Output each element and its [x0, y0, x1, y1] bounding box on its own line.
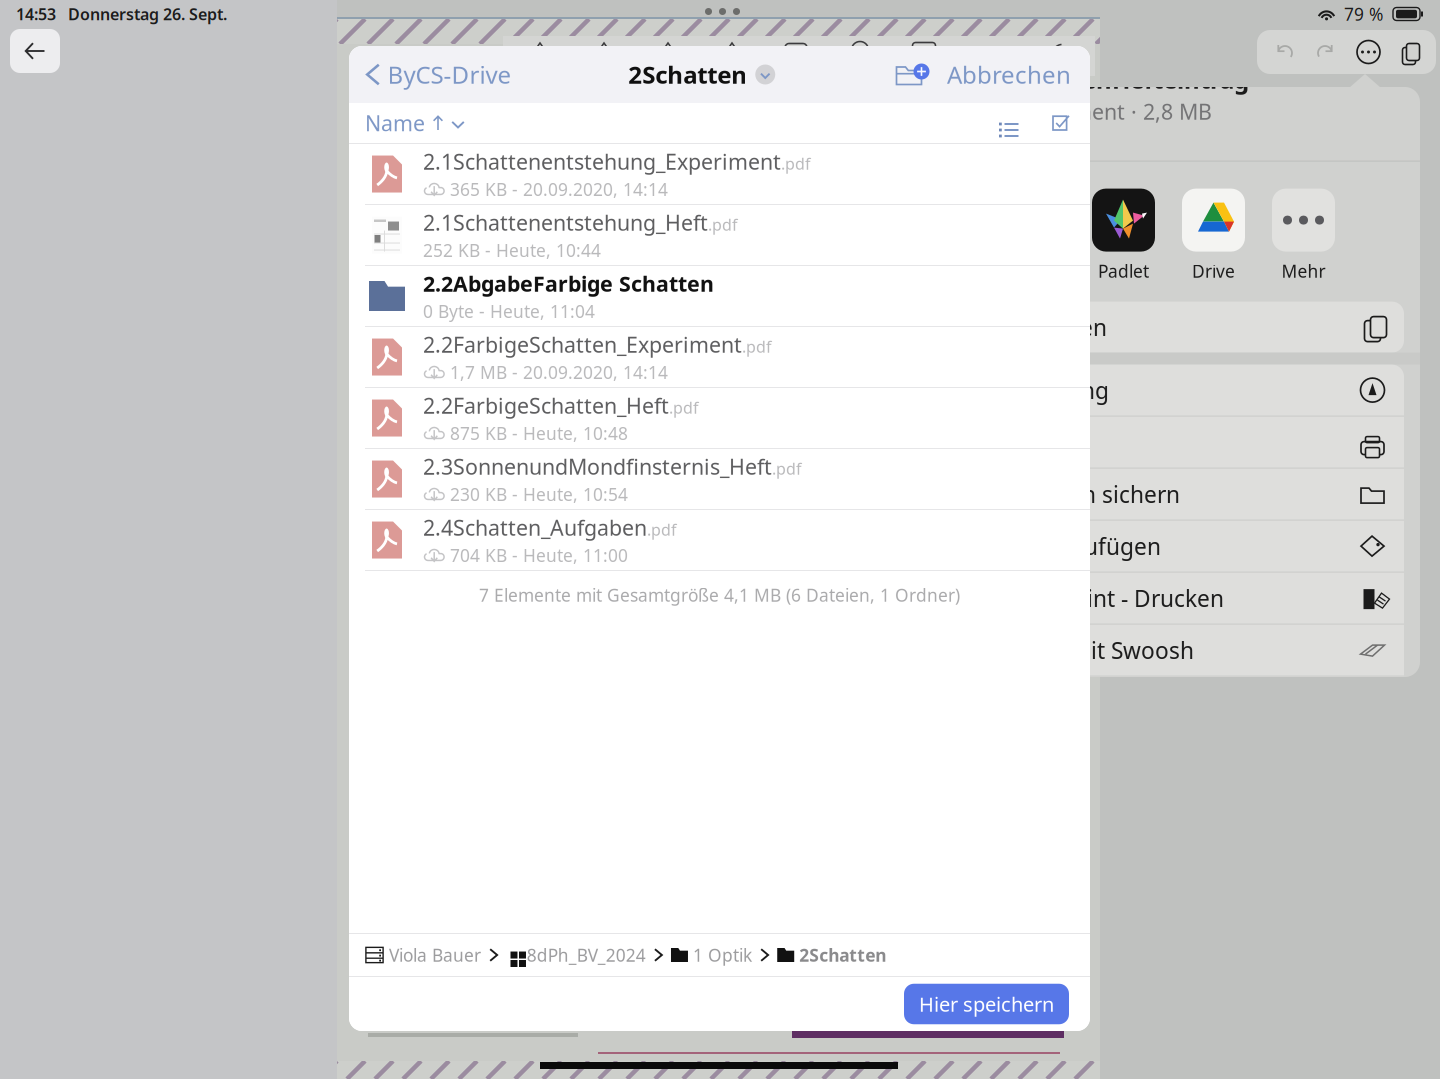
staticText: ByCS-Drive: [387, 59, 511, 90]
staticText: Viola Bauer: [389, 943, 481, 966]
staticText: .pdf: [781, 153, 811, 174]
button[interactable]: List view: [996, 103, 1016, 143]
staticText: 1 Optik: [693, 943, 752, 966]
button[interactable]: Kopieren: [966, 677, 1404, 728]
staticText: Name: [365, 109, 425, 137]
staticText: Duplizieren: [984, 312, 1107, 342]
button[interactable]: 1 Optik: [671, 943, 752, 966]
button[interactable]: 2.1Schattenentstehung_Experiment: [349, 144, 1090, 204]
staticText: 14:53: [16, 3, 56, 25]
button[interactable]: ByCS-Drive: [349, 46, 511, 103]
button[interactable]: In Dateien sichern: [966, 469, 1404, 520]
staticText: Markierung: [984, 375, 1109, 405]
staticText: Tags hinzufügen: [984, 531, 1161, 561]
staticText: PDF-Dokument · 2,8 MB: [972, 97, 1212, 126]
staticText: Drucken: [984, 427, 1074, 457]
staticText: Donnerstag 26. Sept.: [68, 3, 227, 25]
staticText: 8dPh_BV_2024: [527, 943, 646, 966]
button[interactable]: 2.3SonnenundMondfinsternis_Heft: [349, 449, 1090, 509]
button[interactable]: Senden mit Swoosh: [966, 625, 1404, 676]
staticText: 2.2FarbigeSchatten_Heft: [423, 391, 669, 420]
staticText: 2.5SchattenHefteintrag: [972, 63, 1249, 95]
staticText: 704 KB - Heute, 11:00: [450, 544, 628, 567]
staticText: Senden mit Swoosh: [984, 635, 1194, 665]
button[interactable]: Redo: [1313, 42, 1337, 62]
staticText: 7 Elemente mit Gesamtgröße 4,1 MB (6 Dat…: [479, 583, 960, 606]
button[interactable]: Drucken: [966, 417, 1404, 468]
staticText: 2.2FarbigeSchatten_Experiment: [423, 330, 742, 359]
button[interactable]: Select items: [1016, 103, 1090, 143]
staticText: 365 KB - 20.09.2020, 14:14: [450, 178, 668, 201]
staticText: Hier speichern: [919, 991, 1054, 1017]
staticText: 1,7 MB - 20.09.2020, 14:14: [450, 361, 668, 384]
button[interactable]: Name: [349, 103, 465, 143]
staticText: Padlet: [1098, 260, 1149, 283]
staticText: 2Schatten: [799, 943, 886, 966]
staticText: 0 Byte - Heute, 11:04: [423, 300, 595, 323]
button[interactable]: Undo: [1273, 42, 1297, 62]
button[interactable]: Hier speichern: [904, 984, 1069, 1024]
button[interactable]: Padlet: [1092, 189, 1155, 283]
staticText: Mobile Print - Drucken: [984, 583, 1224, 613]
staticText: 79 %: [1344, 2, 1383, 25]
button[interactable]: 2.1Schattenentstehung_Heft: [349, 205, 1090, 265]
button[interactable]: Duplizieren: [966, 302, 1404, 353]
button[interactable]: 2.4Schatten_Aufgaben: [349, 510, 1090, 570]
button[interactable]: 2.2FarbigeSchatten_Experiment: [349, 327, 1090, 387]
staticText: .pdf: [742, 336, 772, 357]
button[interactable]: More: [1357, 40, 1380, 63]
staticText: 230 KB - Heute, 10:54: [450, 483, 628, 506]
button[interactable]: Schoolwork: [972, 189, 1065, 283]
button[interactable]: Viola Bauer: [365, 943, 481, 966]
staticText: Drive: [1192, 260, 1235, 283]
staticText: 2.2AbgabeFarbige Schatten: [423, 269, 714, 298]
button[interactable]: Drive: [1182, 189, 1245, 283]
staticText: 875 KB - Heute, 10:48: [450, 422, 628, 445]
staticText: Mehr: [1281, 260, 1325, 283]
staticText: Schoolwork: [972, 260, 1065, 283]
button[interactable]: 2Schatten: [628, 46, 775, 103]
staticText: 2.1Schattenentstehung_Heft: [423, 208, 708, 237]
staticText: .pdf: [647, 519, 677, 540]
staticText: 2.3SonnenundMondfinsternis_Heft: [423, 452, 772, 481]
button[interactable]: Pages: [1400, 41, 1418, 63]
staticText: 2.4Schatten_Aufgaben: [423, 513, 647, 542]
button[interactable]: New folder: [892, 46, 926, 103]
button[interactable]: Mobile Print - Drucken: [966, 573, 1404, 624]
button[interactable]: 2Schatten: [777, 943, 886, 966]
staticText: .pdf: [772, 458, 802, 479]
staticText: 252 KB - Heute, 10:44: [423, 239, 601, 262]
staticText: 2.1Schattenentstehung_Experiment: [423, 147, 781, 176]
button[interactable]: Abbrechen: [926, 46, 1090, 103]
staticText: 2Schatten: [628, 59, 747, 90]
staticText: In Dateien sichern: [984, 479, 1180, 509]
button[interactable]: Back: [10, 29, 60, 73]
button[interactable]: 2.2FarbigeSchatten_Heft: [349, 388, 1090, 448]
button[interactable]: Mehr: [1272, 189, 1335, 283]
staticText: .pdf: [708, 214, 738, 235]
staticText: .pdf: [669, 397, 699, 418]
button[interactable]: 8dPh_BV_2024: [506, 943, 646, 966]
staticText: Abbrechen: [947, 59, 1071, 90]
button[interactable]: Markierung: [966, 365, 1404, 416]
button[interactable]: 2.2AbgabeFarbige Schatten: [349, 266, 1090, 326]
button[interactable]: Tags hinzufügen: [966, 521, 1404, 572]
